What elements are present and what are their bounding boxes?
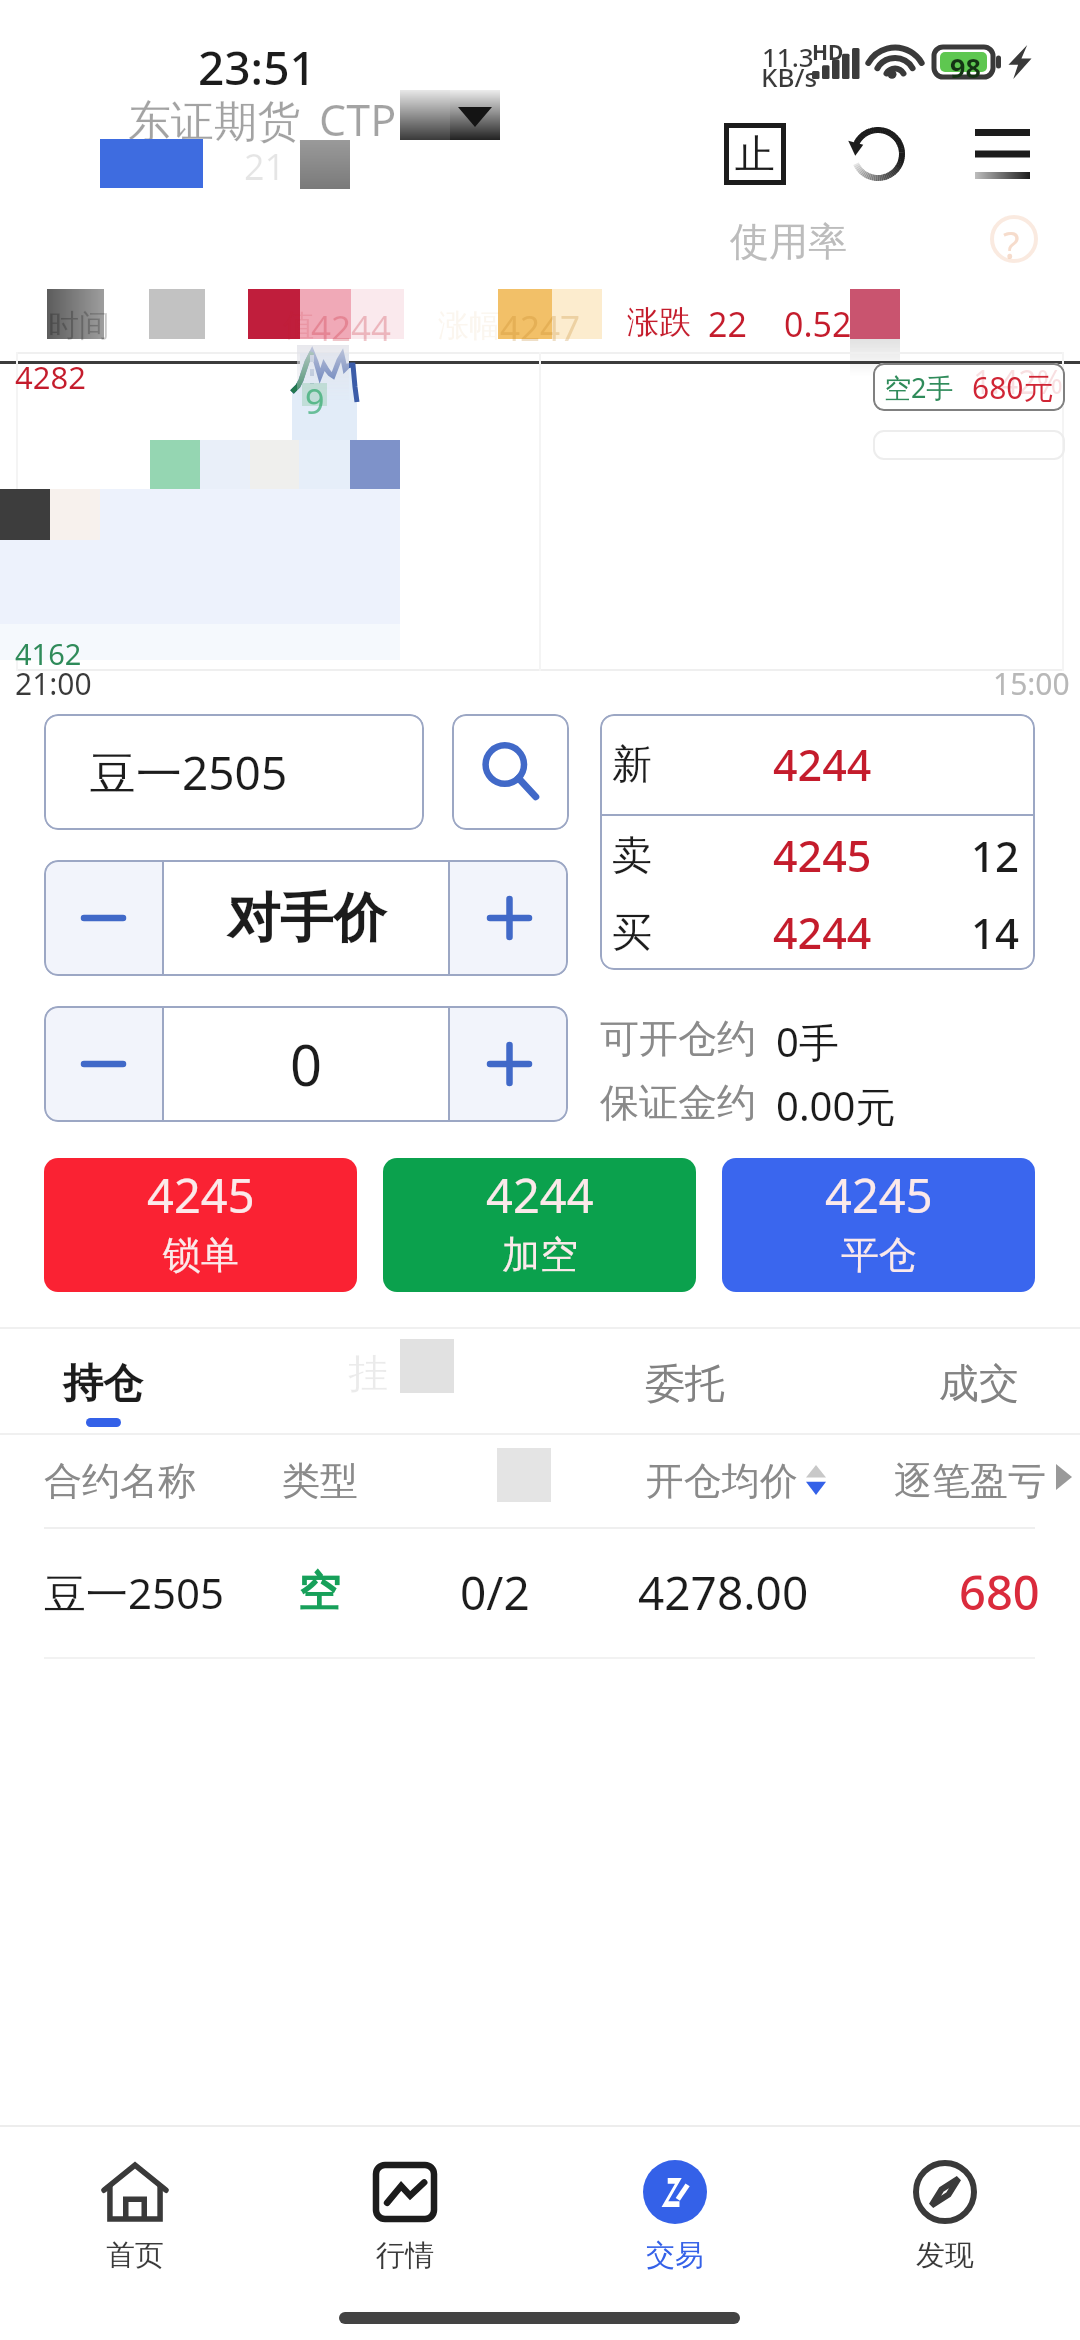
staticText: 4244 bbox=[486, 1163, 594, 1227]
staticText: 21 bbox=[244, 142, 286, 191]
staticText: 平仓 bbox=[841, 1231, 917, 1279]
button[interactable]: 菜单 bbox=[962, 114, 1042, 194]
staticText: 23:51 bbox=[198, 36, 316, 99]
button[interactable]: 4244 bbox=[383, 1158, 696, 1292]
button[interactable]: 买 bbox=[600, 894, 1035, 970]
staticText: 680 bbox=[959, 1560, 1040, 1624]
staticText: 0.00元 bbox=[776, 1078, 896, 1133]
staticText: HD bbox=[812, 38, 844, 67]
staticText: 买 bbox=[612, 907, 652, 957]
staticText: 发现 bbox=[916, 2237, 974, 2274]
staticText: 委托 bbox=[645, 1358, 725, 1408]
button[interactable]: 空2手 bbox=[873, 363, 1065, 411]
staticText: 开仓均价 bbox=[646, 1457, 798, 1505]
button[interactable]: 豆一2505 bbox=[0, 1527, 1080, 1657]
button[interactable]: 增加 bbox=[450, 860, 568, 976]
staticText: 0/2 bbox=[460, 1561, 530, 1624]
button[interactable]: 行情 bbox=[270, 2127, 540, 2302]
staticText: 4245 bbox=[825, 1163, 933, 1227]
button[interactable]: 刷新 bbox=[838, 114, 918, 194]
staticText: 新 bbox=[612, 739, 652, 789]
staticText: 1.42% bbox=[973, 360, 1064, 404]
staticText: 东证期货_CTP bbox=[128, 90, 397, 149]
staticText: 4282 bbox=[15, 356, 86, 398]
staticText: 4245 bbox=[147, 1163, 255, 1227]
staticText: 4162 bbox=[15, 634, 82, 673]
staticText: 4278.00 bbox=[638, 1561, 809, 1624]
button[interactable]: 增加 bbox=[450, 1006, 568, 1122]
button[interactable]: 搜索合约 bbox=[452, 714, 569, 830]
staticText: 对手价 bbox=[227, 885, 386, 952]
button[interactable]: 4245 bbox=[44, 1158, 357, 1292]
staticText: 时间 bbox=[48, 306, 110, 345]
staticText: 涨幅 bbox=[438, 306, 500, 345]
button[interactable]: 止损设置 bbox=[715, 114, 795, 194]
staticText: 21:00 bbox=[15, 663, 92, 704]
staticText: 豆一2505 bbox=[90, 741, 288, 804]
staticText: 加空 bbox=[502, 1231, 578, 1279]
button[interactable]: 0 bbox=[164, 1006, 448, 1122]
staticText: 挂 bbox=[348, 1348, 388, 1398]
staticText: 22 bbox=[708, 301, 747, 347]
button[interactable]: 对手价 bbox=[164, 860, 448, 976]
button[interactable]: 成交 bbox=[914, 1336, 1044, 1434]
staticText: KB/s bbox=[761, 59, 818, 94]
button[interactable]: 豆一2505 bbox=[44, 714, 424, 830]
staticText: 可开仓约 bbox=[600, 1014, 756, 1063]
button[interactable]: 交易 bbox=[540, 2127, 810, 2302]
staticText: 行情 bbox=[376, 2237, 434, 2274]
staticText: 680元 bbox=[972, 367, 1054, 408]
staticText: 锁单 bbox=[163, 1231, 239, 1279]
button[interactable]: 首页 bbox=[0, 2127, 270, 2302]
staticText: 4244 bbox=[311, 304, 392, 352]
staticText: 涨跌 bbox=[627, 302, 691, 342]
button[interactable]: 委托 bbox=[620, 1336, 750, 1434]
staticText: 14 bbox=[971, 904, 1020, 961]
button[interactable]: 持仓 bbox=[44, 1336, 162, 1434]
staticText: 4245 bbox=[773, 826, 872, 885]
staticText: 豆一2505 bbox=[44, 1564, 225, 1621]
staticText: 成交 bbox=[939, 1358, 1019, 1408]
staticText: 止 bbox=[735, 129, 775, 179]
staticText: 空2手 bbox=[884, 369, 954, 406]
staticText: 11.3 bbox=[762, 39, 814, 74]
staticText: 0手 bbox=[776, 1014, 839, 1069]
staticText: 合约名称 bbox=[44, 1457, 196, 1505]
staticText: 4244 bbox=[773, 903, 872, 962]
staticText: ? bbox=[1003, 218, 1020, 270]
staticText: 首页 bbox=[106, 2237, 164, 2274]
staticText: 卖 bbox=[612, 830, 652, 880]
staticText: 15:00 bbox=[993, 663, 1070, 704]
staticText: 逐笔盈亏 bbox=[894, 1457, 1046, 1505]
staticText: 值 bbox=[283, 306, 314, 345]
staticText: 空 bbox=[298, 1566, 340, 1619]
button[interactable]: 新 bbox=[600, 714, 1035, 814]
staticText: 9 bbox=[305, 378, 325, 424]
staticText: 类型 bbox=[282, 1457, 358, 1505]
staticText: 4247 bbox=[500, 304, 581, 352]
button[interactable]: 减少 bbox=[44, 1006, 162, 1122]
button[interactable]: 减少 bbox=[44, 860, 162, 976]
staticText: 保证金约 bbox=[600, 1078, 756, 1127]
staticText: 0 bbox=[290, 1026, 323, 1102]
button[interactable]: 发现 bbox=[810, 2127, 1080, 2302]
staticText: 98 bbox=[950, 49, 981, 86]
staticText: 12 bbox=[971, 827, 1020, 884]
staticText: 4244 bbox=[773, 735, 872, 794]
staticText: 交易 bbox=[646, 2237, 704, 2274]
button[interactable]: 4245 bbox=[722, 1158, 1035, 1292]
button[interactable]: 卖 bbox=[600, 816, 1035, 894]
staticText: 持仓 bbox=[63, 1358, 143, 1408]
staticText: 0.52% bbox=[784, 301, 880, 347]
staticText: 使用率 bbox=[730, 217, 847, 266]
